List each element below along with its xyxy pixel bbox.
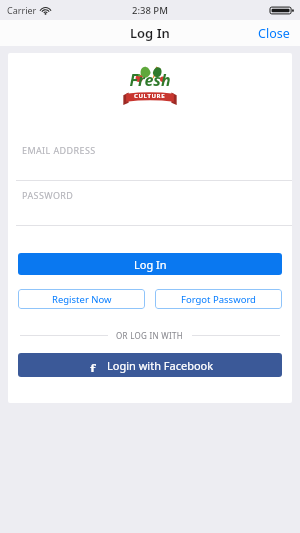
staticText: Register Now	[52, 293, 112, 306]
button[interactable]: Close	[248, 21, 300, 46]
staticText: CULTURE	[134, 92, 166, 100]
other: Facebook	[87, 360, 99, 372]
button[interactable]: Log In	[18, 253, 282, 275]
staticText: EMAIL ADDRESS	[22, 144, 96, 156]
button[interactable]: PASSWORD	[8, 181, 292, 226]
other: Fresh Culture logo	[119, 65, 181, 107]
staticText: Fresh	[129, 69, 171, 91]
staticText: Log In	[130, 24, 170, 42]
button[interactable]: Facebook	[18, 353, 282, 377]
staticText: 2:38 PM	[132, 4, 168, 17]
button[interactable]: Forgot Password	[155, 289, 282, 309]
button[interactable]: Register Now	[18, 289, 145, 309]
staticText: Forgot Password	[181, 293, 256, 306]
staticText: Carrier	[7, 4, 37, 16]
staticText: Log In	[134, 257, 167, 272]
staticText: Login with Facebook	[107, 358, 214, 373]
staticText: f	[90, 360, 96, 372]
staticText: Close	[258, 25, 290, 42]
staticText: PASSWORD	[22, 189, 74, 201]
staticText: OR LOG IN WITH	[116, 330, 184, 341]
button[interactable]: EMAIL ADDRESS	[8, 136, 292, 181]
